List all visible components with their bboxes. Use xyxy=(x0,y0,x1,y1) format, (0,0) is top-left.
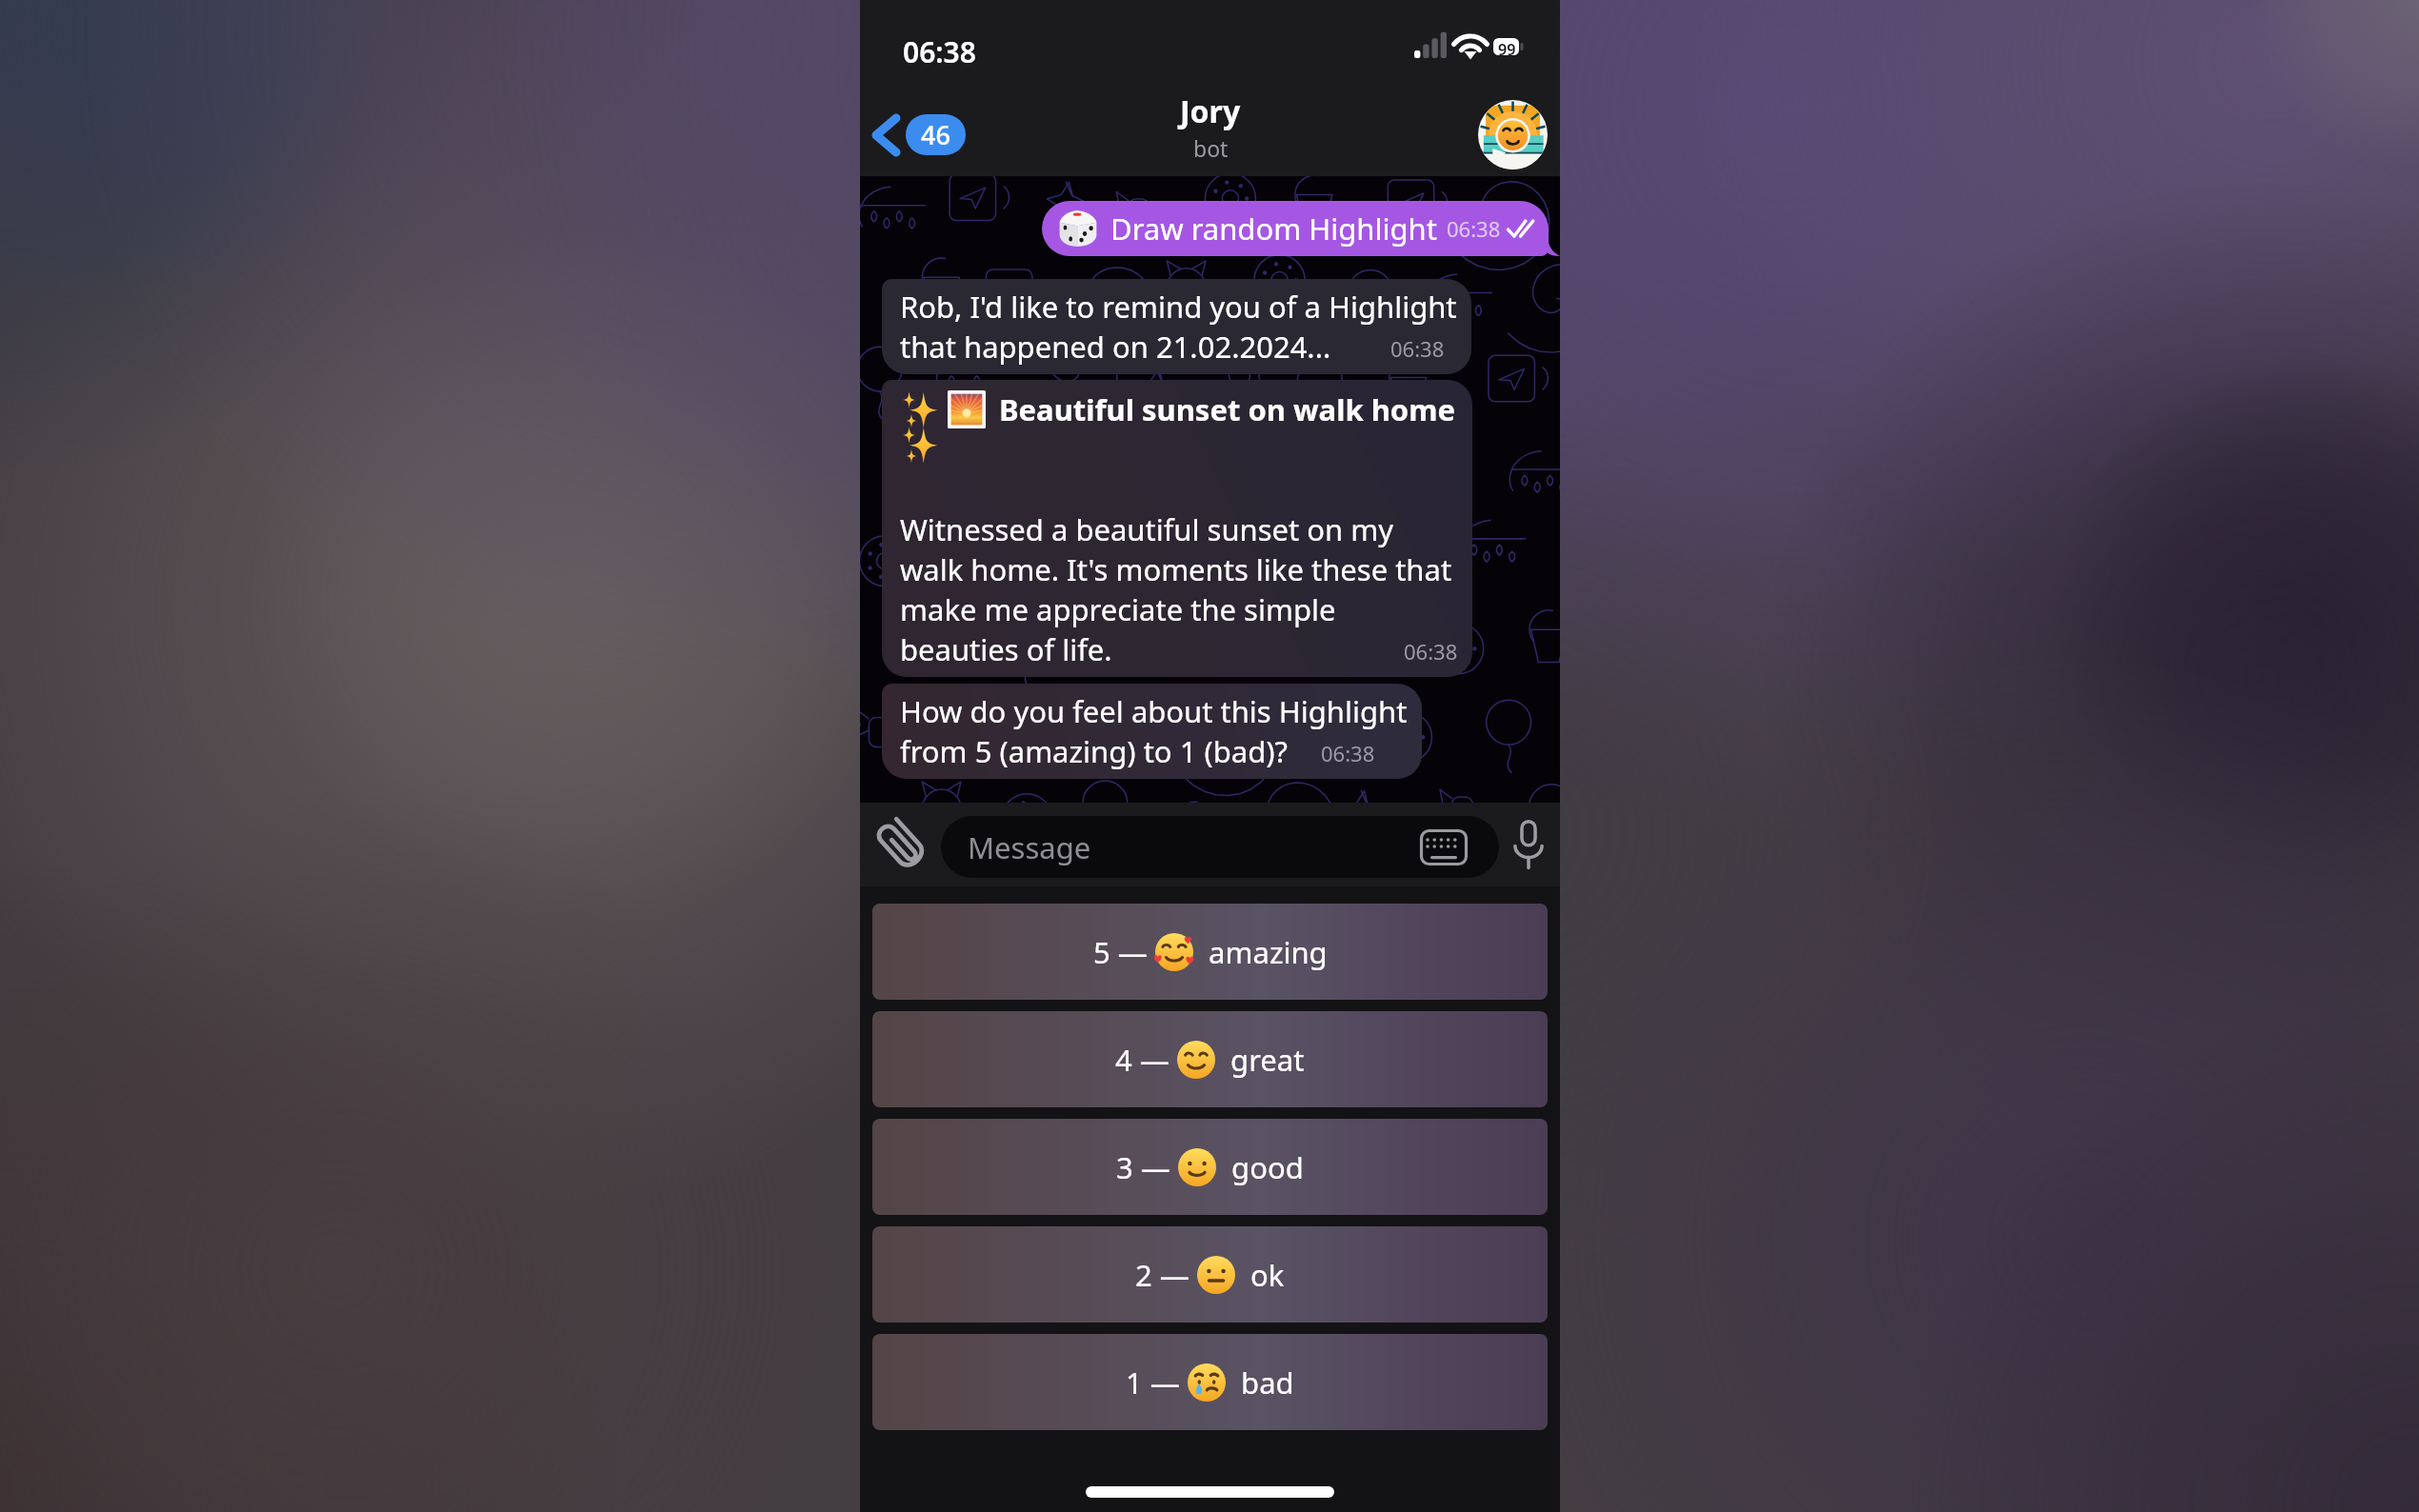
staticText: Rob, I'd like to remind you of a Highlig… xyxy=(900,287,1457,327)
staticText: 06:38 xyxy=(903,32,976,71)
button[interactable]: How do you feel about this Highlight xyxy=(882,684,1422,779)
button[interactable]: 5 — xyxy=(872,904,1548,1000)
staticText: 06:38 xyxy=(1390,334,1445,363)
button[interactable]: Attach file xyxy=(883,819,921,870)
staticText: beauties of life. xyxy=(900,629,1112,669)
staticText: 06:38 xyxy=(1447,214,1501,243)
staticText: bot xyxy=(1193,133,1229,163)
staticText: 5 — xyxy=(1093,932,1155,972)
staticText: bad xyxy=(1226,1363,1294,1403)
button[interactable]: Profile photo xyxy=(1478,100,1548,169)
button[interactable]: Rob, I'd like to remind you of a Highlig… xyxy=(882,279,1471,374)
staticText: ok xyxy=(1235,1255,1285,1295)
staticText: 1 — xyxy=(1126,1363,1188,1403)
staticText: 06:38 xyxy=(1321,739,1375,767)
staticText: that happened on 21.02.2024... xyxy=(900,327,1331,367)
staticText: from 5 (amazing) to 1 (bad)? xyxy=(900,731,1289,771)
staticText: Witnessed a beautiful sunset on my walk … xyxy=(900,509,1452,629)
staticText: 4 — xyxy=(1115,1040,1177,1080)
button[interactable]: 2 — xyxy=(872,1226,1548,1323)
button[interactable]: Beautiful sunset on walk home xyxy=(882,380,1472,677)
button[interactable]: 4 — xyxy=(872,1011,1548,1107)
staticText: Beautiful sunset on walk home xyxy=(999,389,1455,429)
staticText: Draw random Highlight xyxy=(1110,209,1437,249)
button[interactable]: Message xyxy=(941,816,1499,878)
button[interactable]: 1 — xyxy=(872,1334,1548,1430)
staticText: great xyxy=(1215,1040,1305,1080)
staticText: 2 — xyxy=(1135,1255,1197,1295)
staticText: 46 xyxy=(921,117,950,152)
button[interactable]: 3 — xyxy=(872,1119,1548,1215)
staticText: 3 — xyxy=(1116,1147,1178,1187)
staticText: How do you feel about this Highlight xyxy=(900,691,1408,731)
button[interactable]: Voice message xyxy=(1513,820,1544,869)
staticText: Jory xyxy=(1180,90,1241,132)
staticText: 06:38 xyxy=(1404,637,1458,666)
staticText: good xyxy=(1216,1147,1304,1187)
staticText: Message xyxy=(968,827,1091,867)
button[interactable]: Back xyxy=(868,110,971,159)
staticText: 99 xyxy=(1498,39,1516,60)
button[interactable]: Draw random Highlight xyxy=(1042,201,1549,256)
staticText: amazing xyxy=(1193,932,1328,972)
button[interactable]: Keyboard xyxy=(1420,829,1468,865)
